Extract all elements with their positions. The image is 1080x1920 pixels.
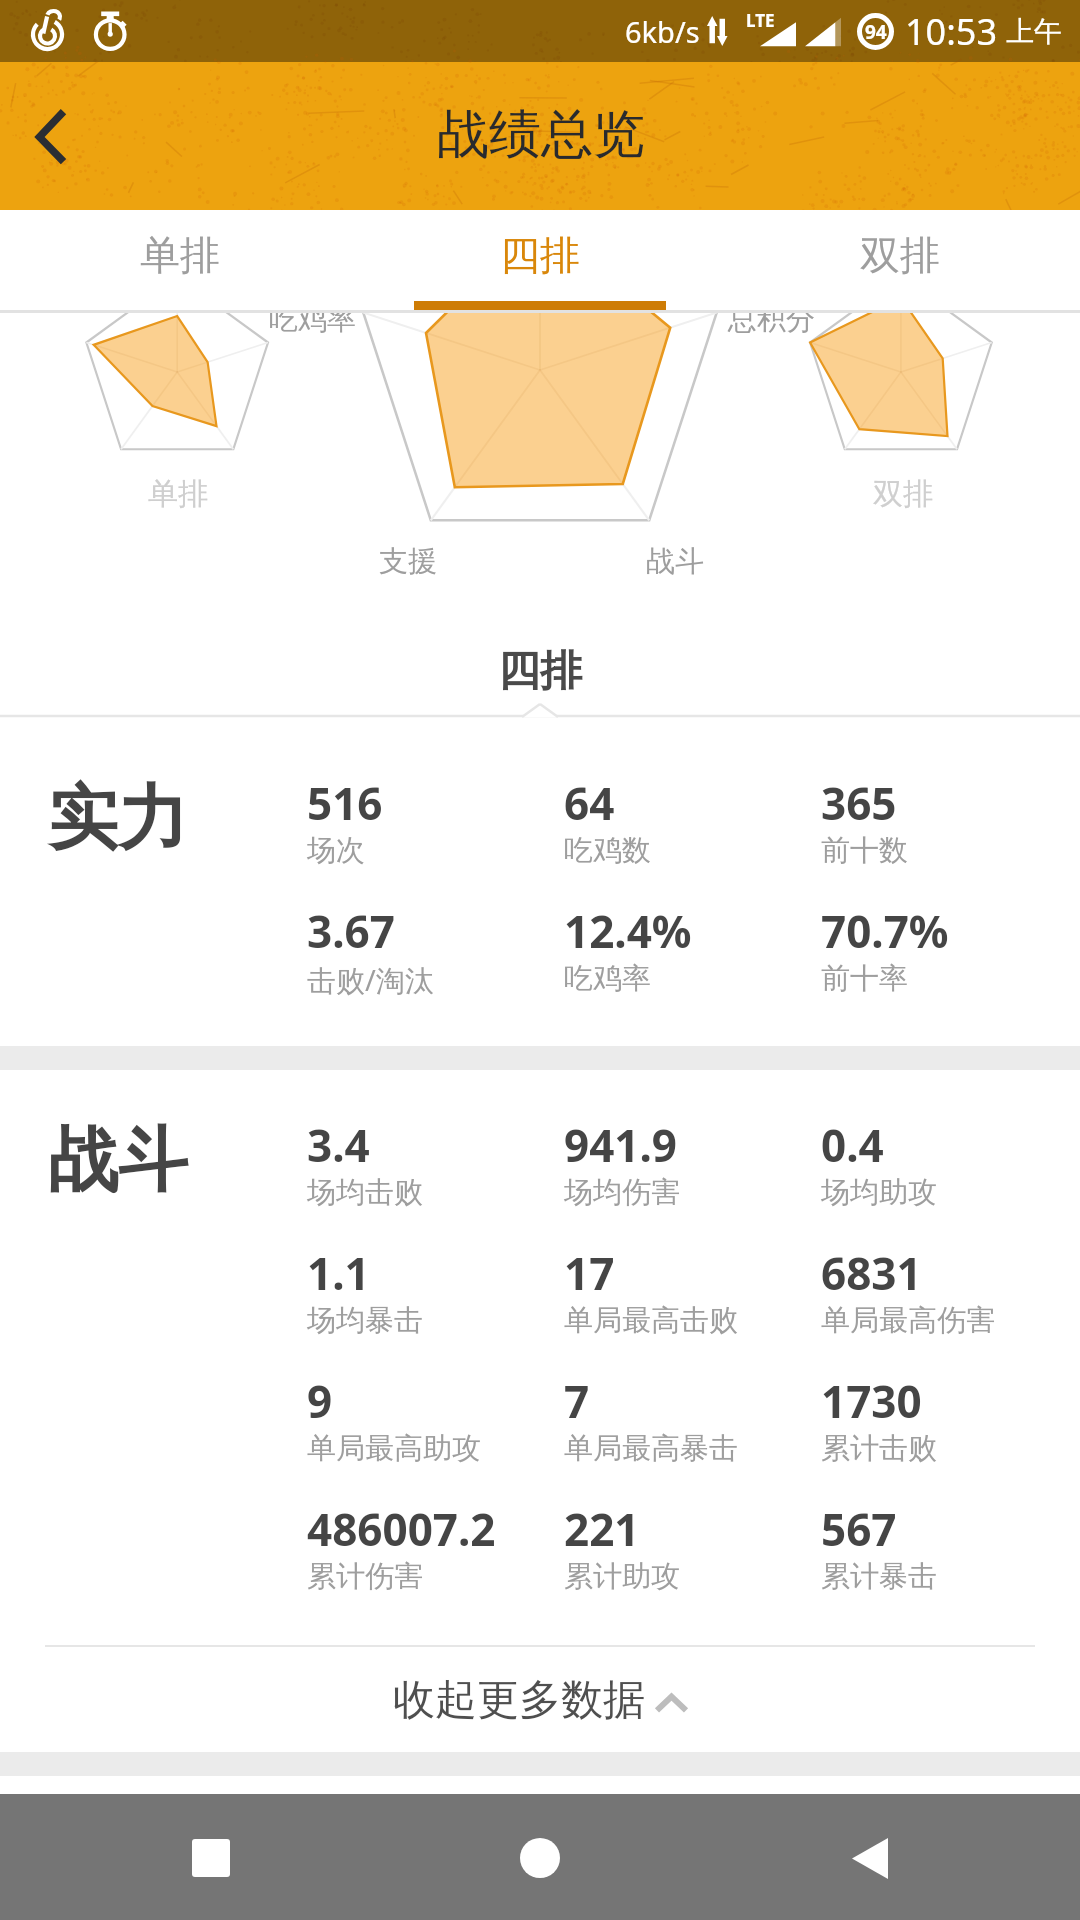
staticText: 战斗 <box>48 1117 188 1205</box>
staticText: 221 <box>564 1499 640 1559</box>
staticText: 单局最高暴击 <box>564 1430 738 1467</box>
staticText: 总积分 <box>728 301 815 338</box>
staticText: 支援 <box>379 543 437 580</box>
staticText: 94 <box>865 19 887 45</box>
staticText: 场均击败 <box>307 1174 423 1211</box>
staticText: 单排 <box>140 230 220 280</box>
staticText: 前十率 <box>821 960 908 997</box>
staticText: 四排 <box>500 230 580 280</box>
button[interactable]: Recent apps <box>120 1794 300 1920</box>
button[interactable]: 收起更多数据 <box>0 1648 1080 1752</box>
staticText: 486007.2 <box>307 1499 496 1559</box>
button[interactable]: 双排 <box>785 313 1020 513</box>
staticText: 941.9 <box>564 1115 678 1175</box>
staticText: 1.1 <box>307 1243 370 1303</box>
staticText: 单局最高助攻 <box>307 1430 481 1467</box>
staticText: 567 <box>821 1499 897 1559</box>
staticText: 516 <box>307 773 383 833</box>
staticText: LTE <box>746 9 775 32</box>
staticText: 0.4 <box>821 1115 884 1175</box>
staticText: 四排 <box>0 645 1080 698</box>
staticText: 累计暴击 <box>821 1558 937 1595</box>
staticText: 吃鸡率 <box>564 960 651 997</box>
staticText: 场次 <box>307 832 365 869</box>
staticText: 单局最高击败 <box>564 1302 738 1339</box>
staticText: 17 <box>564 1243 615 1303</box>
staticText: 3.67 <box>307 901 395 961</box>
staticText: 场均伤害 <box>564 1174 680 1211</box>
staticText: 实力 <box>48 775 188 863</box>
button[interactable]: 双排 <box>720 210 1080 312</box>
staticText: 场均暴击 <box>307 1302 423 1339</box>
staticText: 3.4 <box>307 1115 370 1175</box>
staticText: 单排 <box>148 475 208 513</box>
button[interactable]: Home <box>450 1794 630 1920</box>
button[interactable]: Back <box>780 1794 960 1920</box>
staticText: 战绩总览 <box>437 102 645 168</box>
staticText: 累计助攻 <box>564 1558 680 1595</box>
staticText: 累计伤害 <box>307 1558 423 1595</box>
staticText: 64 <box>564 773 615 833</box>
button[interactable]: 四排 <box>360 210 720 312</box>
staticText: 70.7% <box>821 901 949 961</box>
staticText: 吃鸡数 <box>564 832 651 869</box>
staticText: 12.4% <box>564 901 692 961</box>
staticText: 吃鸡率 <box>269 301 356 338</box>
staticText: 上午 <box>1006 14 1062 49</box>
staticText: 10:53 <box>905 7 998 56</box>
staticText: 单局最高伤害 <box>821 1302 995 1339</box>
staticText: 365 <box>821 773 897 833</box>
staticText: 累计击败 <box>821 1430 937 1467</box>
staticText: 战斗 <box>646 543 704 580</box>
staticText: 双排 <box>873 475 933 513</box>
staticText: 6kb/s <box>625 12 700 51</box>
staticText: 收起更多数据 <box>393 1674 645 1727</box>
staticText: 前十数 <box>821 832 908 869</box>
staticText: 6831 <box>821 1243 922 1303</box>
button[interactable]: 单排 <box>60 313 295 513</box>
staticText: 击败/淘汰 <box>307 960 434 1000</box>
button[interactable]: 单排 <box>0 210 360 312</box>
staticText: 9 <box>307 1371 333 1431</box>
staticText: 双排 <box>860 230 940 280</box>
staticText: 7 <box>564 1371 590 1431</box>
staticText: 1730 <box>821 1371 922 1431</box>
button[interactable]: Back <box>0 62 101 210</box>
staticText: 场均助攻 <box>821 1174 937 1211</box>
